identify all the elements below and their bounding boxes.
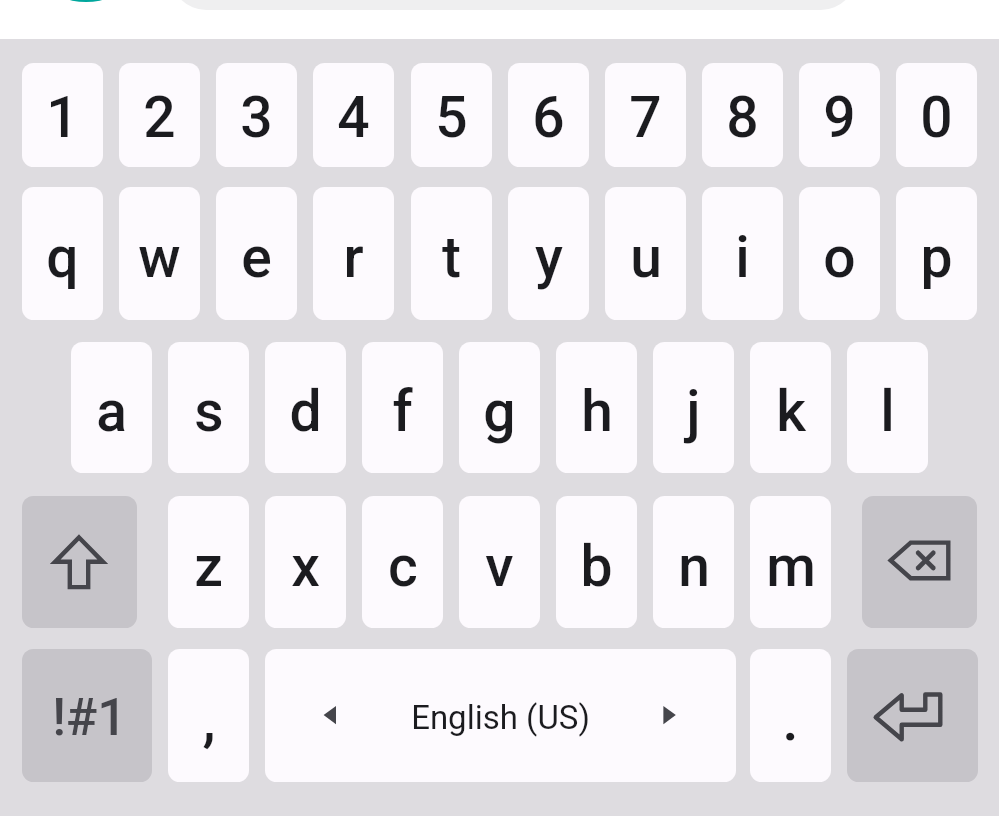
button[interactable]: a — [71, 342, 152, 473]
button[interactable]: 6 — [508, 63, 589, 167]
staticText: t — [442, 224, 461, 291]
staticText: 1 — [46, 84, 79, 151]
button[interactable]: q — [22, 187, 103, 320]
button[interactable]: 5 — [411, 63, 492, 167]
staticText: 6 — [532, 84, 565, 151]
button[interactable]: f — [362, 342, 443, 473]
button[interactable]: c — [362, 496, 443, 628]
button[interactable]: k — [750, 342, 831, 473]
staticText: r — [343, 224, 364, 291]
button[interactable]: Enter — [847, 649, 978, 782]
staticText: q — [46, 224, 79, 291]
button[interactable]: d — [265, 342, 346, 473]
button[interactable]: Message input field — [171, 0, 856, 10]
staticText: 0 — [920, 84, 953, 151]
staticText: 9 — [823, 84, 856, 151]
button[interactable]: m — [750, 496, 831, 628]
staticText: , — [202, 685, 216, 754]
staticText: z — [194, 533, 223, 600]
button[interactable]: 7 — [605, 63, 686, 167]
staticText: e — [241, 224, 272, 291]
staticText: b — [580, 533, 613, 600]
button[interactable]: Profile avatar — [62, 0, 110, 3]
button[interactable]: w — [119, 187, 200, 320]
button[interactable]: r — [313, 187, 394, 320]
staticText: x — [291, 533, 320, 600]
button[interactable]: b — [556, 496, 637, 628]
staticText: w — [138, 224, 181, 291]
button[interactable]: y — [508, 187, 589, 320]
staticText: f — [392, 378, 413, 445]
staticText: 5 — [435, 84, 468, 151]
button[interactable]: 0 — [896, 63, 977, 167]
staticText: o — [823, 224, 856, 291]
button[interactable]: 2 — [119, 63, 200, 167]
button[interactable]: Backspace — [862, 496, 977, 628]
staticText: k — [776, 378, 806, 445]
staticText: l — [880, 378, 895, 445]
staticText: !#1 — [52, 687, 127, 748]
staticText: 4 — [337, 84, 370, 151]
staticText: s — [194, 378, 224, 445]
staticText: c — [388, 533, 418, 600]
staticText: 2 — [143, 84, 176, 151]
button[interactable]: v — [459, 496, 540, 628]
button[interactable]: x — [265, 496, 346, 628]
button[interactable]: , — [168, 649, 249, 782]
staticText: g — [483, 378, 516, 445]
staticText: English (US) — [411, 698, 590, 737]
staticText: . — [782, 685, 799, 754]
button[interactable]: Shift — [22, 496, 137, 628]
button[interactable]: g — [459, 342, 540, 473]
staticText: a — [96, 378, 127, 445]
button[interactable]: 1 — [22, 63, 103, 167]
button[interactable]: u — [605, 187, 686, 320]
staticText: 7 — [629, 84, 662, 151]
button[interactable]: n — [653, 496, 734, 628]
button[interactable]: l — [847, 342, 928, 473]
button[interactable]: 8 — [702, 63, 783, 167]
staticText: p — [920, 224, 953, 291]
staticText: v — [485, 533, 514, 600]
button[interactable]: 9 — [799, 63, 880, 167]
staticText: 8 — [726, 84, 759, 151]
button[interactable]: i — [702, 187, 783, 320]
button[interactable]: o — [799, 187, 880, 320]
staticText: m — [766, 533, 816, 600]
button[interactable]: e — [216, 187, 297, 320]
button[interactable]: 3 — [216, 63, 297, 167]
button[interactable]: p — [896, 187, 977, 320]
staticText: j — [686, 378, 701, 445]
button[interactable]: . — [750, 649, 831, 782]
staticText: d — [289, 378, 322, 445]
button[interactable]: s — [168, 342, 249, 473]
button[interactable]: !#1 — [22, 649, 152, 782]
staticText: 3 — [240, 84, 273, 151]
staticText: u — [630, 224, 662, 291]
button[interactable]: 4 — [313, 63, 394, 167]
button[interactable]: z — [168, 496, 249, 628]
button[interactable]: t — [411, 187, 492, 320]
staticText: n — [678, 533, 710, 600]
button[interactable]: Space — [265, 649, 736, 782]
staticText: i — [735, 224, 750, 291]
button[interactable]: j — [653, 342, 734, 473]
button[interactable]: h — [556, 342, 637, 473]
staticText: y — [535, 224, 563, 291]
staticText: h — [581, 378, 613, 445]
